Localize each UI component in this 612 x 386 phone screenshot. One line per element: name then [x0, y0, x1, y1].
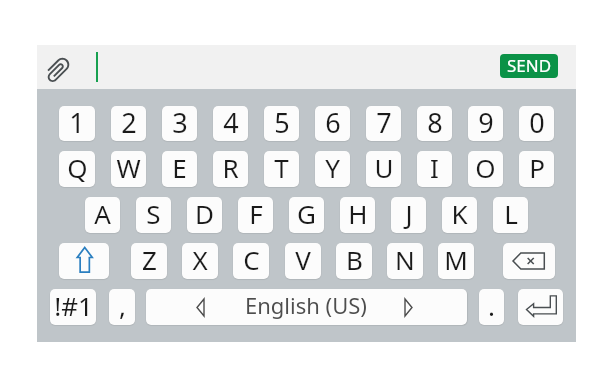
- button[interactable]: T: [256, 146, 307, 192]
- button[interactable]: 1: [51, 101, 103, 146]
- button[interactable]: .: [479, 284, 504, 330]
- staticText: 3: [172, 106, 188, 139]
- button[interactable]: 0: [511, 101, 562, 146]
- button[interactable]: 3: [154, 101, 205, 146]
- button[interactable]: English (US): [146, 284, 467, 330]
- button[interactable]: R: [205, 146, 256, 192]
- button[interactable]: ,: [109, 284, 135, 330]
- button[interactable]: G: [281, 192, 332, 238]
- staticText: Z: [142, 243, 157, 277]
- button[interactable]: F: [230, 192, 281, 238]
- staticText: P: [529, 151, 545, 185]
- staticText: A: [94, 197, 111, 231]
- button[interactable]: !#1: [50, 284, 96, 330]
- staticText: O: [475, 151, 496, 185]
- staticText: S: [146, 197, 161, 231]
- staticText: K: [451, 197, 468, 231]
- staticText: I: [430, 151, 439, 185]
- staticText: C: [243, 243, 260, 277]
- staticText: SEND: [507, 54, 552, 77]
- staticText: 4: [223, 106, 239, 139]
- staticText: 9: [478, 106, 494, 139]
- button[interactable]: U: [358, 146, 409, 192]
- staticText: 0: [529, 106, 545, 139]
- button[interactable]: 7: [358, 101, 409, 146]
- button[interactable]: 8: [409, 101, 460, 146]
- button[interactable]: H: [332, 192, 383, 238]
- staticText: 6: [325, 106, 341, 139]
- button[interactable]: Y: [307, 146, 358, 192]
- button[interactable]: Q: [51, 146, 103, 192]
- staticText: F: [249, 197, 263, 231]
- staticText: 5: [274, 106, 290, 139]
- staticText: .: [488, 289, 495, 323]
- button[interactable]: D: [179, 192, 230, 238]
- button[interactable]: L: [485, 192, 536, 238]
- staticText: T: [274, 151, 289, 185]
- button[interactable]: I: [409, 146, 460, 192]
- staticText: W: [116, 151, 141, 185]
- button[interactable]: Enter: [518, 284, 563, 330]
- staticText: H: [348, 197, 368, 231]
- button[interactable]: 5: [256, 101, 307, 146]
- button[interactable]: 9: [460, 101, 511, 146]
- staticText: 1: [69, 106, 85, 139]
- button[interactable]: O: [460, 146, 511, 192]
- button[interactable]: C: [233, 238, 269, 284]
- button[interactable]: X: [182, 238, 218, 284]
- button[interactable]: S: [128, 192, 179, 238]
- staticText: L: [504, 197, 518, 231]
- button[interactable]: 6: [307, 101, 358, 146]
- button[interactable]: M: [438, 238, 474, 284]
- staticText: J: [405, 197, 413, 231]
- button[interactable]: Attach file: [38, 50, 78, 90]
- button[interactable]: A: [77, 192, 128, 238]
- button[interactable]: W: [103, 146, 154, 192]
- button[interactable]: N: [387, 238, 423, 284]
- staticText: E: [172, 151, 187, 185]
- staticText: U: [374, 151, 394, 185]
- button[interactable]: J: [383, 192, 434, 238]
- button[interactable]: K: [434, 192, 485, 238]
- button[interactable]: B: [336, 238, 372, 284]
- button[interactable]: E: [154, 146, 205, 192]
- staticText: ,: [119, 289, 126, 323]
- button[interactable]: P: [511, 146, 562, 192]
- button[interactable]: V: [285, 238, 321, 284]
- button[interactable]: Z: [131, 238, 167, 284]
- staticText: Q: [67, 151, 88, 185]
- staticText: English (US): [245, 290, 367, 320]
- staticText: G: [297, 197, 316, 231]
- staticText: M: [444, 243, 468, 277]
- staticText: 7: [376, 106, 392, 139]
- staticText: N: [395, 243, 415, 277]
- staticText: 8: [427, 106, 443, 139]
- staticText: D: [195, 197, 214, 231]
- staticText: X: [192, 243, 208, 277]
- staticText: V: [295, 243, 311, 277]
- button[interactable]: SEND: [500, 54, 558, 78]
- button[interactable]: 4: [205, 101, 256, 146]
- staticText: Y: [325, 151, 340, 185]
- button[interactable]: 2: [103, 101, 154, 146]
- button[interactable]: Shift: [59, 238, 109, 284]
- staticText: R: [222, 151, 239, 185]
- staticText: 2: [121, 106, 137, 139]
- staticText: B: [346, 243, 363, 277]
- button[interactable]: Backspace: [503, 238, 555, 284]
- staticText: !#1: [54, 289, 93, 323]
